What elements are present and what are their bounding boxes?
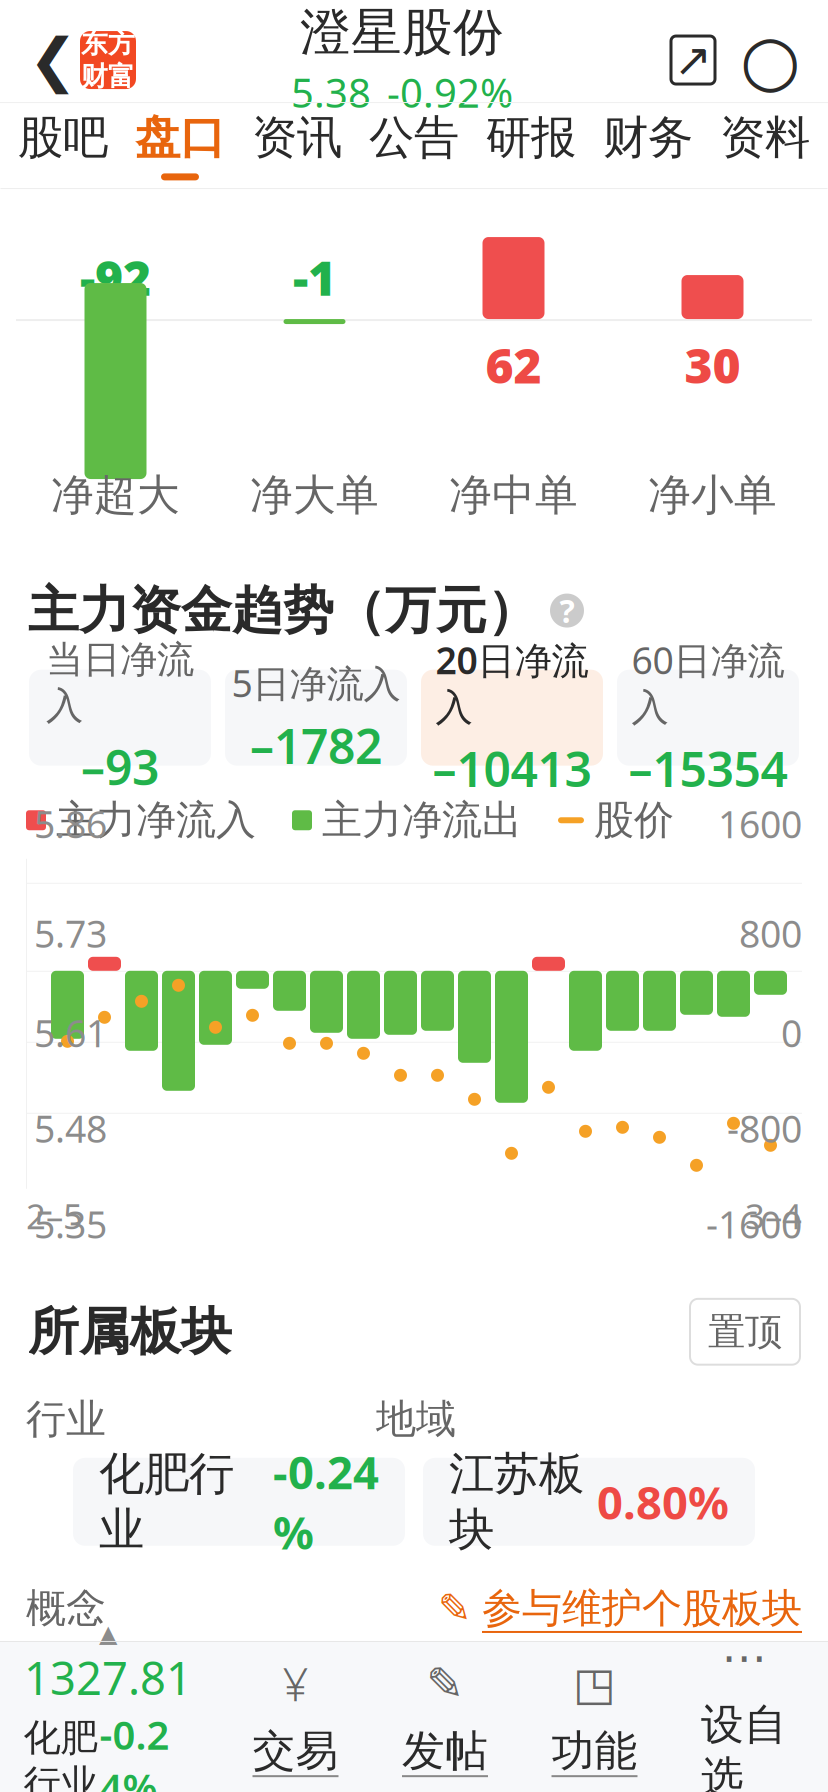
staticText: 化肥行业: [99, 1446, 234, 1557]
staticText: ?: [559, 589, 574, 632]
staticText: -1600: [706, 1199, 802, 1249]
staticText: 主力净流入: [56, 796, 256, 845]
staticText: 研报: [486, 110, 576, 165]
staticText: ○: [740, 21, 800, 99]
staticText: 置顶: [708, 1309, 782, 1355]
button[interactable]: 分享: [668, 34, 718, 86]
staticText: 当日净流入: [46, 637, 194, 729]
staticText: 5.61: [34, 1008, 107, 1058]
staticText: 净中单: [449, 469, 578, 521]
staticText: ↗: [674, 34, 712, 86]
button[interactable]: 财务: [589, 103, 706, 189]
staticText: 30: [684, 333, 740, 397]
button[interactable]: 20日净流入: [421, 670, 603, 766]
staticText: -1: [293, 245, 336, 309]
staticText: 交易: [252, 1725, 338, 1777]
staticText: 净超大: [51, 469, 180, 521]
staticText: 股吧: [18, 110, 108, 165]
staticText: 所属板块: [28, 1301, 232, 1363]
button[interactable]: 5日净流入: [225, 670, 407, 766]
staticText: –10413: [432, 736, 591, 800]
staticText: 发帖: [402, 1725, 488, 1777]
button[interactable]: 股吧: [4, 103, 121, 189]
staticText: 2–5: [26, 1193, 83, 1239]
staticText: 主力净流出: [322, 796, 522, 845]
staticText: 800: [739, 908, 802, 958]
staticText: 3–4: [745, 1193, 802, 1239]
staticText: 1327.81: [24, 1647, 192, 1708]
button[interactable]: 研报: [472, 103, 589, 189]
staticText: 公告: [369, 110, 459, 165]
button[interactable]: 当日净流入: [29, 670, 211, 766]
button[interactable]: ⋯: [684, 1631, 804, 1792]
staticText: ✎: [426, 1658, 464, 1709]
staticText: 5.48: [34, 1104, 107, 1153]
staticText: 设自选: [701, 1699, 787, 1792]
staticText: 净大单: [250, 469, 379, 521]
staticText: 江苏板块: [449, 1446, 584, 1557]
staticText: 功能: [551, 1725, 637, 1777]
button[interactable]: 江苏板块: [423, 1458, 755, 1546]
button[interactable]: 置顶: [690, 1299, 800, 1365]
button[interactable]: ◳: [534, 1657, 654, 1777]
staticText: ⋯: [721, 1632, 766, 1683]
staticText: 0: [781, 1008, 802, 1058]
button[interactable]: ✎: [385, 1657, 505, 1777]
staticText: ¥: [282, 1654, 308, 1714]
button[interactable]: 60日净流入: [617, 670, 799, 766]
staticText: 股价: [594, 796, 674, 845]
button[interactable]: 东方财富首页: [80, 31, 136, 89]
staticText: 主力资金趋势（万元）: [28, 579, 538, 642]
staticText: 5.35: [34, 1199, 107, 1249]
staticText: 盘口: [135, 110, 225, 165]
staticText: ❮: [28, 27, 77, 93]
staticText: 地域: [376, 1395, 456, 1444]
staticText: -0.24%: [273, 1442, 379, 1562]
staticText: 参与维护个股板块: [482, 1584, 802, 1633]
staticText: 概念: [26, 1584, 106, 1633]
staticText: 净小单: [648, 469, 777, 521]
button[interactable]: ▲: [10, 1620, 206, 1792]
staticText: -800: [727, 1104, 802, 1153]
button[interactable]: ¥: [235, 1657, 355, 1777]
staticText: 东方: [81, 27, 135, 60]
staticText: 澄星股份: [300, 1, 504, 64]
staticText: 1600: [718, 799, 802, 848]
button[interactable]: 返回: [26, 22, 80, 98]
staticText: 财富: [81, 60, 135, 93]
button[interactable]: 资料: [706, 103, 823, 189]
button[interactable]: 化肥行业: [73, 1458, 405, 1546]
button[interactable]: 资讯: [238, 103, 355, 189]
staticText: 0.80%: [597, 1472, 729, 1532]
staticText: ✎: [438, 1586, 472, 1631]
staticText: 资料: [720, 110, 810, 165]
button[interactable]: ✎: [438, 1584, 802, 1633]
staticText: 20日净流入: [435, 635, 588, 730]
staticText: 化肥行业: [23, 1715, 97, 1792]
staticText: 5.73: [34, 908, 107, 958]
staticText: -0.24%: [99, 1708, 169, 1792]
staticText: 资讯: [252, 110, 342, 165]
staticText: 62: [485, 333, 541, 397]
staticText: -92: [80, 245, 151, 309]
button[interactable]: 搜索: [738, 28, 802, 92]
staticText: 5.38: [291, 66, 371, 119]
staticText: 财务: [603, 110, 693, 165]
staticText: –93: [81, 735, 159, 798]
staticText: 行业: [26, 1395, 106, 1444]
staticText: –15354: [628, 736, 787, 800]
button[interactable]: 盘口: [121, 103, 238, 189]
staticText: -0.92%: [387, 66, 513, 119]
button[interactable]: 指标说明: [550, 594, 584, 628]
staticText: 5.86: [34, 799, 107, 848]
button[interactable]: 公告: [355, 103, 472, 189]
staticText: ◳: [573, 1658, 616, 1709]
staticText: 5日净流入: [231, 658, 400, 708]
staticText: ▲: [99, 1620, 117, 1647]
staticText: –1782: [250, 714, 382, 777]
staticText: 60日净流入: [631, 635, 784, 730]
